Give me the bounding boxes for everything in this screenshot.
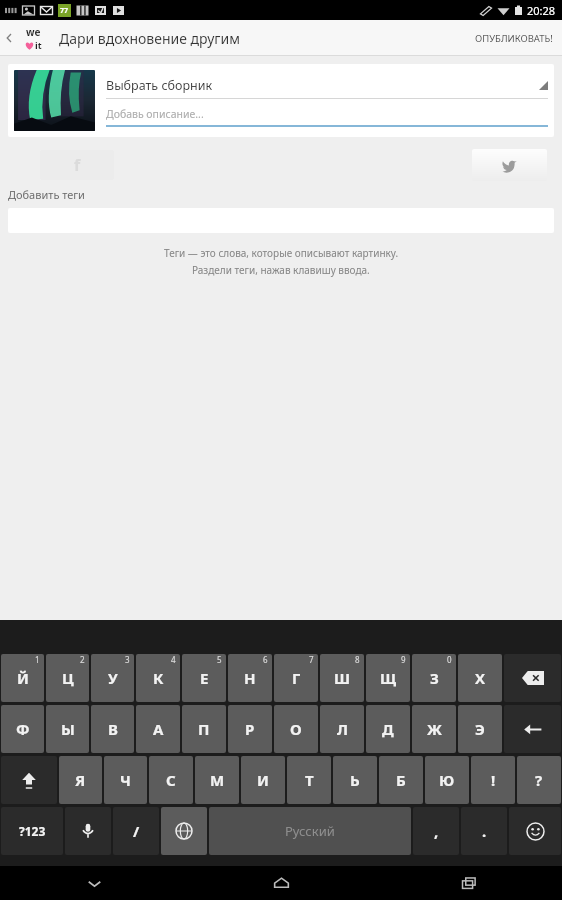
button[interactable]: К xyxy=(136,654,180,702)
button[interactable]: З xyxy=(412,654,456,702)
staticText: ! xyxy=(491,770,496,790)
staticText: Е xyxy=(200,668,209,688)
staticText: 8 xyxy=(355,654,360,665)
button[interactable]: Т xyxy=(287,756,331,804)
button[interactable]: We Heart It logo xyxy=(17,20,49,56)
button[interactable]: ? xyxy=(517,756,561,804)
staticText: Ю xyxy=(439,770,455,790)
staticText: 9 xyxy=(401,654,406,665)
staticText: О xyxy=(290,719,302,739)
staticText: Дари вдохновение другим xyxy=(59,29,240,48)
staticText: С xyxy=(166,770,176,790)
button[interactable]: Ж xyxy=(412,705,456,753)
button[interactable]: Я xyxy=(59,756,102,804)
button[interactable]: Э xyxy=(458,705,502,753)
button[interactable]: С xyxy=(149,756,193,804)
button[interactable]: Л xyxy=(320,705,364,753)
button[interactable]: Х xyxy=(458,654,502,702)
button[interactable]: Д xyxy=(366,705,410,753)
staticText: В xyxy=(108,719,118,739)
staticText: Л xyxy=(337,719,348,739)
button[interactable]: Русский xyxy=(209,807,411,855)
staticText: Раздели теги, нажав клавишу ввода. xyxy=(192,263,370,277)
button[interactable]: Home xyxy=(188,866,375,900)
button[interactable]: Ч xyxy=(104,756,147,804)
button[interactable]: Emoji xyxy=(509,807,561,855)
staticText: Ф xyxy=(16,719,30,739)
staticText: 2 xyxy=(80,654,85,665)
button[interactable]: , xyxy=(413,807,459,855)
staticText: 0 xyxy=(447,654,452,665)
button[interactable]: Ь xyxy=(333,756,377,804)
button[interactable]: Change language xyxy=(161,807,207,855)
button[interactable]: Г xyxy=(274,654,318,702)
button[interactable]: Ю xyxy=(425,756,469,804)
button[interactable]: Щ xyxy=(366,654,410,702)
button[interactable]: П xyxy=(182,705,226,753)
staticText: 4 xyxy=(171,654,176,665)
button[interactable]: / xyxy=(113,807,159,855)
staticText: Б xyxy=(396,770,406,790)
button[interactable]: Enter xyxy=(504,705,561,753)
button[interactable]: В xyxy=(91,705,134,753)
staticText: 77 xyxy=(60,6,69,16)
button[interactable]: Ф xyxy=(1,705,44,753)
button[interactable]: ?123 xyxy=(1,807,63,855)
button[interactable]: . xyxy=(461,807,507,855)
button[interactable]: Recent apps xyxy=(375,866,562,900)
staticText: . xyxy=(482,821,487,841)
button[interactable]: А xyxy=(136,705,180,753)
button[interactable]: И xyxy=(241,756,285,804)
staticText: Русский xyxy=(285,822,335,840)
button[interactable]: Н xyxy=(228,654,272,702)
staticText: Ь xyxy=(350,770,360,790)
button[interactable]: Е xyxy=(182,654,226,702)
staticText: 20:28 xyxy=(527,3,556,18)
button[interactable]: О xyxy=(274,705,318,753)
button[interactable]: Р xyxy=(228,705,272,753)
button[interactable]: Back xyxy=(0,20,17,56)
button[interactable]: Ы xyxy=(46,705,89,753)
staticText: Щ xyxy=(380,668,397,688)
staticText: Х xyxy=(475,668,486,688)
button[interactable]: Voice input xyxy=(65,807,111,855)
staticText: Ч xyxy=(120,770,131,790)
button[interactable]: Й xyxy=(1,654,44,702)
staticText: Г xyxy=(292,668,301,688)
staticText: ?123 xyxy=(19,823,46,839)
staticText: 3 xyxy=(125,654,130,665)
staticText: / xyxy=(133,821,140,841)
staticText: А xyxy=(153,719,164,739)
staticText: Т xyxy=(305,770,314,790)
staticText: ОПУБЛИКОВАТЬ! xyxy=(475,32,553,45)
staticText: Э xyxy=(475,719,485,739)
staticText: Й xyxy=(17,668,29,688)
button[interactable]: Share on Twitter xyxy=(472,149,547,181)
staticText: Д xyxy=(382,719,394,739)
staticText: 6 xyxy=(263,654,268,665)
staticText: М xyxy=(210,770,225,790)
staticText: Теги — это слова, которые описывают карт… xyxy=(164,246,399,260)
staticText: ? xyxy=(535,770,543,790)
staticText: Добавь описание... xyxy=(106,107,204,121)
button[interactable]: Hide keyboard xyxy=(0,866,188,900)
button[interactable]: Ш xyxy=(320,654,364,702)
button[interactable]: У xyxy=(91,654,134,702)
staticText: f xyxy=(74,154,81,176)
button[interactable]: Б xyxy=(379,756,423,804)
button[interactable]: Выбрать сборник xyxy=(8,64,554,137)
staticText: П xyxy=(198,719,210,739)
button[interactable]: ОПУБЛИКОВАТЬ! xyxy=(466,20,562,56)
button[interactable]: Backspace xyxy=(504,654,561,702)
button[interactable]: ! xyxy=(471,756,515,804)
button[interactable]: Shift xyxy=(1,756,57,804)
button[interactable]: Ц xyxy=(46,654,89,702)
staticText: З xyxy=(430,668,439,688)
staticText: it xyxy=(35,39,42,51)
staticText: 7 xyxy=(309,654,314,665)
button[interactable]: М xyxy=(195,756,239,804)
staticText: Р xyxy=(245,719,255,739)
staticText: Ц xyxy=(62,668,74,688)
